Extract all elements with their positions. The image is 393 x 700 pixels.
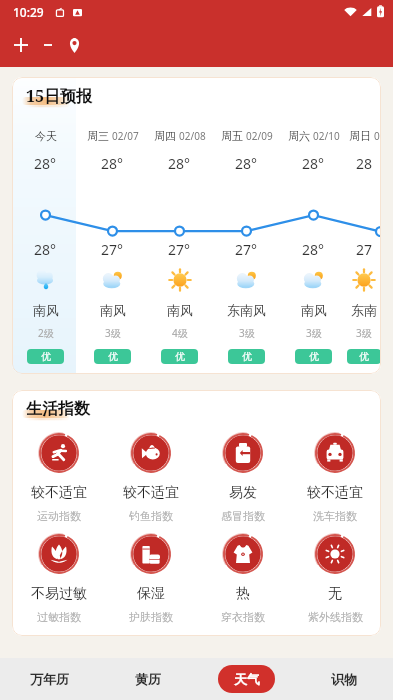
- staticText: 02/10: [313, 129, 340, 143]
- staticText: 天气: [234, 671, 260, 687]
- staticText: 02/07: [112, 129, 139, 143]
- staticText: 周四: [154, 129, 176, 143]
- button[interactable]: 天气: [197, 658, 295, 700]
- staticText: 周日: [349, 129, 371, 143]
- button[interactable]: Remove city: [36, 33, 60, 57]
- button[interactable]: 较不适宜: [289, 433, 381, 523]
- staticText: 周六: [288, 129, 310, 143]
- staticText: 较不适宜: [123, 484, 179, 502]
- staticText: 28°: [101, 154, 124, 173]
- staticText: 优: [175, 350, 185, 363]
- staticText: 优: [108, 350, 118, 363]
- staticText: 27: [356, 240, 373, 259]
- staticText: 万年历: [30, 671, 69, 687]
- staticText: 02/09: [246, 129, 273, 143]
- staticText: 2级: [38, 326, 54, 340]
- staticText: 优: [242, 350, 252, 363]
- staticText: 过敏指数: [37, 610, 81, 624]
- staticText: 较不适宜: [31, 484, 87, 502]
- staticText: 27°: [235, 240, 258, 259]
- staticText: 28°: [302, 154, 325, 173]
- button[interactable]: 无: [289, 534, 381, 624]
- staticText: 南风: [100, 302, 126, 318]
- staticText: 10:29: [13, 4, 44, 20]
- staticText: 3级: [306, 326, 322, 340]
- staticText: 东南: [351, 302, 377, 318]
- button[interactable]: 较不适宜: [105, 433, 197, 523]
- staticText: 周三: [87, 129, 109, 143]
- staticText: 无: [328, 585, 342, 603]
- staticText: 钓鱼指数: [129, 509, 173, 523]
- staticText: 保湿: [137, 585, 165, 603]
- staticText: 28°: [34, 240, 57, 259]
- staticText: 周五: [221, 129, 243, 143]
- staticText: 南风: [33, 302, 59, 318]
- staticText: 识物: [331, 671, 357, 687]
- staticText: 运动指数: [37, 509, 81, 523]
- button[interactable]: 不易过敏: [12, 534, 105, 624]
- staticText: 4级: [172, 326, 188, 340]
- staticText: 东南风: [227, 302, 266, 318]
- staticText: 3级: [239, 326, 255, 340]
- staticText: 南风: [167, 302, 193, 318]
- staticText: 02/08: [179, 129, 206, 143]
- staticText: 今天: [35, 129, 57, 143]
- button[interactable]: 保湿: [105, 534, 197, 624]
- button[interactable]: 黄历: [99, 658, 197, 700]
- staticText: 紫外线指数: [308, 610, 363, 624]
- button[interactable]: 较不适宜: [12, 433, 105, 523]
- staticText: 3级: [356, 326, 372, 340]
- staticText: 27°: [168, 240, 191, 259]
- button[interactable]: 识物: [295, 658, 393, 700]
- staticText: 洗车指数: [313, 509, 357, 523]
- staticText: 护肤指数: [129, 610, 173, 624]
- staticText: 3级: [105, 326, 121, 340]
- staticText: 热: [236, 585, 250, 603]
- staticText: 优: [359, 350, 369, 363]
- staticText: 南风: [301, 302, 327, 318]
- staticText: 15日预报: [26, 85, 93, 107]
- staticText: 28°: [302, 240, 325, 259]
- staticText: 28°: [168, 154, 191, 173]
- staticText: 优: [309, 350, 319, 363]
- staticText: 27°: [101, 240, 124, 259]
- staticText: 生活指数: [26, 399, 90, 419]
- staticText: 不易过敏: [31, 585, 87, 603]
- staticText: 穿衣指数: [221, 610, 265, 624]
- staticText: 0: [374, 129, 380, 143]
- staticText: 较不适宜: [307, 484, 363, 502]
- staticText: 28: [356, 154, 373, 173]
- staticText: 28°: [235, 154, 258, 173]
- staticText: 感冒指数: [221, 509, 265, 523]
- staticText: 优: [41, 350, 51, 363]
- button[interactable]: Location: [60, 31, 88, 59]
- staticText: 黄历: [135, 671, 161, 687]
- button[interactable]: Add city: [6, 30, 36, 60]
- staticText: 易发: [229, 484, 257, 502]
- staticText: 28°: [34, 154, 57, 173]
- button[interactable]: 热: [197, 534, 289, 624]
- button[interactable]: 万年历: [0, 658, 99, 700]
- button[interactable]: 易发: [197, 433, 289, 523]
